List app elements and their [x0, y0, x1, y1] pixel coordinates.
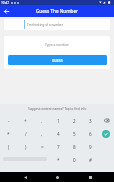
staticText: (	[8, 144, 10, 150]
staticText: *	[57, 157, 60, 163]
button[interactable]: -	[0, 114, 17, 127]
staticText: GUESS	[52, 58, 63, 63]
button[interactable]: (	[0, 140, 17, 153]
button[interactable]: Type a number	[4, 36, 110, 50]
button[interactable]: ,	[34, 127, 50, 140]
button[interactable]: /	[17, 127, 34, 140]
other: Enter	[102, 130, 110, 138]
staticText: )	[25, 144, 27, 150]
button[interactable]: 8	[66, 140, 82, 153]
staticText: 2	[73, 118, 76, 124]
button[interactable]: +	[17, 114, 34, 127]
button[interactable]: 3	[82, 114, 98, 127]
staticText: *	[7, 131, 10, 137]
button[interactable]: 9	[82, 140, 98, 153]
button[interactable]: Back	[2, 7, 11, 16]
staticText: .	[41, 118, 43, 124]
button[interactable]: 2	[66, 114, 82, 127]
staticText: ,	[41, 131, 43, 137]
button[interactable]: 6	[82, 127, 98, 140]
staticText: Type a number	[45, 42, 69, 47]
button[interactable]: 7	[50, 140, 66, 153]
button[interactable]: )	[17, 140, 34, 153]
staticText: 1	[57, 118, 60, 124]
staticText: 10:47	[1, 1, 10, 5]
button[interactable]: 1	[50, 114, 66, 127]
staticText: 7	[57, 144, 60, 150]
button[interactable]: 5	[66, 127, 82, 140]
staticText: Suggest content names? Tap to find info	[28, 107, 87, 111]
staticText: #	[89, 157, 92, 163]
staticText: +	[24, 118, 27, 124]
button[interactable]: *	[0, 127, 17, 140]
button[interactable]: *	[50, 153, 66, 166]
staticText: -	[8, 118, 10, 124]
button[interactable]: Home	[49, 172, 65, 182]
staticText: 5	[73, 131, 76, 137]
button[interactable]: #	[82, 153, 98, 166]
staticText: Guess The Number	[36, 8, 79, 14]
button[interactable]: GUESS	[8, 55, 107, 65]
button[interactable]: Backspace	[98, 114, 114, 127]
button[interactable]: Enter	[98, 127, 114, 140]
staticText: 4	[57, 131, 60, 137]
staticText: /	[25, 131, 27, 137]
staticText: 6	[89, 131, 92, 137]
staticText: 9	[89, 144, 92, 150]
button[interactable]: Back	[17, 172, 33, 182]
other: Backspace	[98, 114, 114, 127]
button[interactable]: =	[34, 140, 50, 153]
button[interactable]: Recents	[82, 172, 98, 182]
staticText: I'm thinking of a number	[27, 23, 64, 27]
staticText: 3	[89, 118, 92, 124]
staticText: 8	[73, 144, 76, 150]
button[interactable]: 4	[50, 127, 66, 140]
button[interactable]: .	[34, 114, 50, 127]
button[interactable]: 0	[66, 153, 82, 166]
staticText: =	[41, 144, 44, 150]
staticText: 0	[73, 157, 76, 163]
